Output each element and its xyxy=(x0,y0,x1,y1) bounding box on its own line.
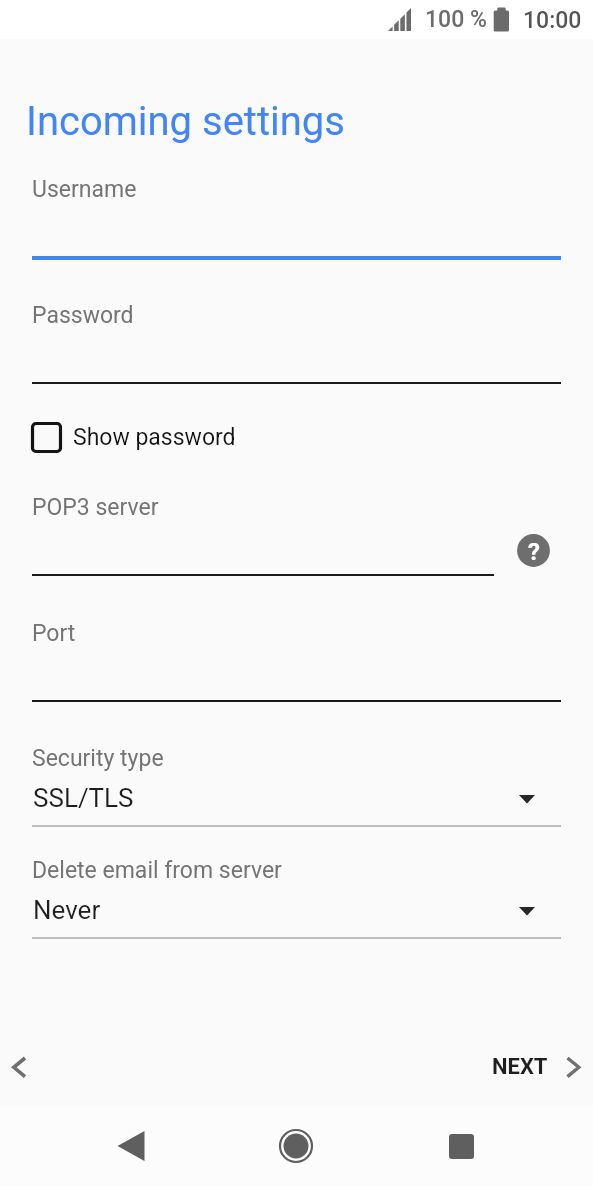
button[interactable]: Open dropdown xyxy=(507,891,547,931)
staticText: Incoming settings xyxy=(26,98,345,145)
staticText: Port xyxy=(32,620,76,647)
staticText: SSL/TLS xyxy=(33,783,134,813)
staticText: 100 % xyxy=(425,6,487,33)
staticText: Username xyxy=(32,176,137,203)
button[interactable]: Help xyxy=(517,534,550,567)
staticText: Security type xyxy=(32,745,164,772)
button[interactable]: NEXT xyxy=(492,1046,589,1088)
staticText: Never xyxy=(33,895,101,925)
staticText: POP3 server xyxy=(32,494,159,521)
staticText: Password xyxy=(32,302,134,329)
button[interactable]: Open dropdown xyxy=(507,779,547,819)
staticText: NEXT xyxy=(492,1054,548,1080)
staticText: Delete email from server xyxy=(32,857,282,884)
button[interactable]: Recent apps xyxy=(431,1116,491,1176)
staticText: 10:00 xyxy=(523,7,582,34)
staticText: Show password xyxy=(73,424,236,451)
button[interactable]: Show password xyxy=(28,416,236,458)
button[interactable]: Home xyxy=(266,1116,326,1176)
button[interactable]: Back xyxy=(101,1116,161,1176)
button[interactable]: Previous xyxy=(0,1046,42,1088)
staticText: ? xyxy=(528,538,540,566)
